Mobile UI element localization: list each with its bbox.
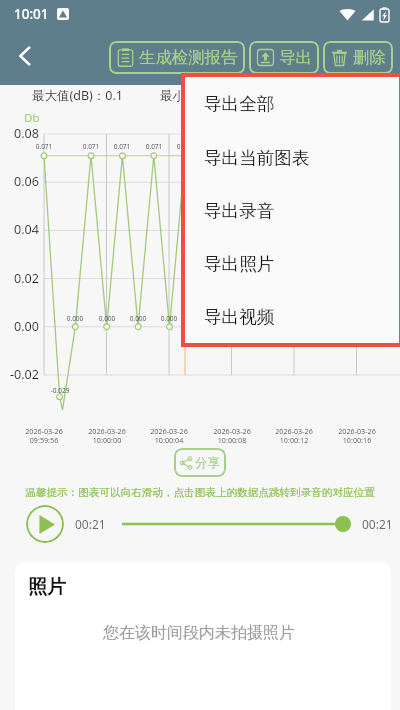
staticText: 00:21 [362,516,393,532]
button[interactable]: 删除 [323,41,393,74]
staticText: 导出全部 [204,93,275,115]
button[interactable]: 导出视频 [185,290,399,343]
staticText: 您在该时间段内未拍摄照片 [103,623,295,643]
staticText: 0.000 [374,314,400,323]
staticText: 0.02 [0,270,39,287]
button[interactable]: 分享 [174,448,226,477]
staticText: 2026-03-26 09:59:56 [9,426,79,445]
staticText: 导出录音 [204,200,275,222]
staticText: 0.000 [123,314,153,323]
staticText: 0.071 [76,142,106,151]
staticText: 照片 [28,575,66,599]
staticText: 0.06 [0,173,39,190]
staticText: 温馨提示：图表可以向右滑动，点击图表上的数据点跳转到录音的对应位置 [0,486,400,499]
staticText: 导出照片 [204,253,275,275]
button[interactable]: Play [26,505,64,543]
staticText: 0.000 [92,314,122,323]
staticText: 分享 [195,455,220,471]
button[interactable]: 导出 [249,41,319,74]
staticText: -0.029 [44,386,76,395]
staticText: 0.071 [202,142,232,151]
staticText: 最大值(dB)：0.1 [32,87,123,104]
staticText: 10:01 [14,5,49,23]
staticText: Db [24,110,40,126]
staticText: 0.071 [139,142,169,151]
button[interactable]: Back [6,36,46,76]
staticText: 最小值(dB)：-0.1 [160,87,255,104]
staticText: 2026-03-26 10:00:08 [197,426,267,445]
button[interactable]: 导出全部 [185,77,399,131]
staticText: 0.071 [170,142,200,151]
staticText: 0.071 [296,142,326,151]
staticText: 2026-03-26 10:00:04 [134,426,204,445]
button[interactable]: 导出录音 [185,184,399,237]
staticText: 0.000 [186,314,216,323]
staticText: 0.04 [0,221,39,238]
button[interactable]: 生成检测报告 [109,41,245,74]
staticText: 导出视频 [204,306,275,328]
staticText: 2026-03-26 10:00:12 [259,426,329,445]
staticText: 删除 [353,47,386,68]
staticText: 生成检测报告 [139,47,238,68]
button[interactable]: 导出当前图表 [185,131,399,184]
staticText: -0.02 [0,366,39,383]
button[interactable]: 导出照片 [185,237,399,290]
staticText: 导出当前图表 [204,147,310,169]
staticText: 0.000 [154,314,184,323]
staticText: 2026-03-26 10:00:16 [322,426,392,445]
staticText: 0.071 [233,142,263,151]
staticText: 2026-03-26 10:00:00 [72,426,142,445]
staticText: 0.071 [107,142,137,151]
staticText: 0.000 [217,314,247,323]
staticText: 0.000 [60,314,90,323]
staticText: 0.000 [249,314,279,323]
staticText: 导出 [279,47,312,68]
staticText: 0.071 [29,142,59,151]
staticText: 0.071 [264,142,294,151]
staticText: 0.00 [0,318,39,335]
staticText: 00:21 [75,516,106,532]
staticText: 0.08 [0,125,39,142]
